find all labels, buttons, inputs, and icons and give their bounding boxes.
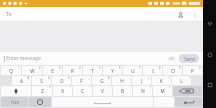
staticText: Send: [184, 56, 195, 62]
button[interactable]: Attach: [166, 53, 177, 64]
button[interactable]: O: [163, 66, 182, 75]
staticText: P: [191, 68, 194, 74]
staticText: :: [110, 86, 111, 90]
button[interactable]: E: [43, 66, 62, 75]
staticText: 3: [59, 66, 61, 70]
staticText: S: [40, 78, 43, 84]
button[interactable]: X: [53, 86, 72, 96]
staticText: E: [51, 68, 54, 74]
button[interactable]: Enter: [175, 97, 202, 107]
staticText: U: [131, 68, 135, 74]
button[interactable]: Shift: [1, 86, 31, 96]
staticText: J: [141, 78, 143, 84]
button[interactable]: U: [123, 66, 142, 75]
button[interactable]: To: [0, 7, 173, 22]
staticText: +: [148, 76, 150, 80]
staticText: To: [6, 11, 12, 18]
button[interactable]: Emoji: [29, 97, 51, 107]
staticText: L: [180, 78, 183, 84]
staticText: F: [80, 78, 83, 84]
staticText: -: [129, 76, 130, 80]
staticText: *: [49, 86, 51, 90]
button[interactable]: L: [172, 76, 191, 85]
staticText: Enter message: [6, 55, 41, 62]
button[interactable]: W: [22, 66, 42, 75]
button[interactable]: J: [132, 76, 151, 85]
staticText: 6: [119, 66, 121, 70]
button[interactable]: N: [133, 86, 152, 96]
button[interactable]: Space: [52, 97, 153, 107]
staticText: C: [81, 88, 84, 94]
staticText: Z: [41, 88, 44, 94]
staticText: Y: [111, 68, 114, 74]
button[interactable]: Backspace: [173, 86, 202, 96]
staticText: K: [160, 78, 163, 84]
staticText: ?123: [11, 100, 19, 105]
button[interactable]: I: [143, 66, 162, 75]
staticText: .: [163, 100, 165, 105]
button[interactable]: ?123: [1, 97, 28, 107]
button[interactable]: R: [63, 66, 82, 75]
staticText: 7: [139, 66, 141, 70]
button[interactable]: F: [72, 76, 91, 85]
staticText: ): [189, 76, 190, 80]
staticText: !: [150, 86, 151, 90]
staticText: V: [101, 88, 104, 94]
button[interactable]: G: [92, 76, 111, 85]
button[interactable]: V: [93, 86, 112, 96]
button[interactable]: Back: [203, 17, 216, 30]
staticText: W: [30, 68, 35, 74]
staticText: M: [160, 88, 165, 94]
button[interactable]: Add people: [173, 7, 188, 22]
staticText: 2: [39, 66, 41, 70]
staticText: (: [169, 76, 170, 80]
staticText: A: [20, 78, 23, 84]
staticText: _: [88, 76, 90, 80]
staticText: G: [100, 78, 104, 84]
button[interactable]: Y: [103, 66, 122, 75]
staticText: B: [121, 88, 124, 94]
staticText: D: [60, 78, 64, 84]
staticText: ;: [130, 86, 131, 90]
staticText: ': [90, 86, 91, 90]
staticText: H: [120, 78, 124, 84]
staticText: 5: [99, 66, 101, 70]
button[interactable]: Enter message: [4, 52, 166, 65]
staticText: 1: [18, 66, 20, 70]
button[interactable]: M: [153, 86, 172, 96]
button[interactable]: B: [113, 86, 132, 96]
button[interactable]: S: [32, 76, 51, 85]
button[interactable]: K: [152, 76, 171, 85]
button[interactable]: Recent apps: [203, 78, 216, 91]
staticText: R: [71, 68, 74, 74]
button[interactable]: A: [12, 76, 31, 85]
staticText: ": [69, 86, 71, 90]
button[interactable]: Q: [1, 66, 21, 75]
staticText: #: [48, 76, 50, 80]
staticText: 9: [179, 66, 181, 70]
button[interactable]: Z: [32, 86, 52, 96]
staticText: T: [91, 68, 94, 74]
staticText: N: [141, 88, 145, 94]
staticText: &: [108, 76, 110, 80]
button[interactable]: P: [183, 66, 202, 75]
staticText: Q: [9, 68, 13, 74]
button[interactable]: D: [52, 76, 71, 85]
staticText: @: [27, 76, 30, 80]
staticText: ?: [169, 86, 171, 90]
staticText: 0: [199, 66, 201, 70]
button[interactable]: H: [112, 76, 131, 85]
button[interactable]: Home: [203, 48, 216, 61]
staticText: 4: [79, 66, 81, 70]
button[interactable]: T: [83, 66, 102, 75]
staticText: 8: [159, 66, 161, 70]
staticText: I: [152, 68, 154, 74]
staticText: X: [61, 88, 64, 94]
button[interactable]: Send: [179, 54, 199, 63]
button[interactable]: More options: [188, 8, 201, 21]
staticText: O: [171, 68, 175, 74]
staticText: $: [68, 76, 70, 80]
button[interactable]: C: [73, 86, 92, 96]
